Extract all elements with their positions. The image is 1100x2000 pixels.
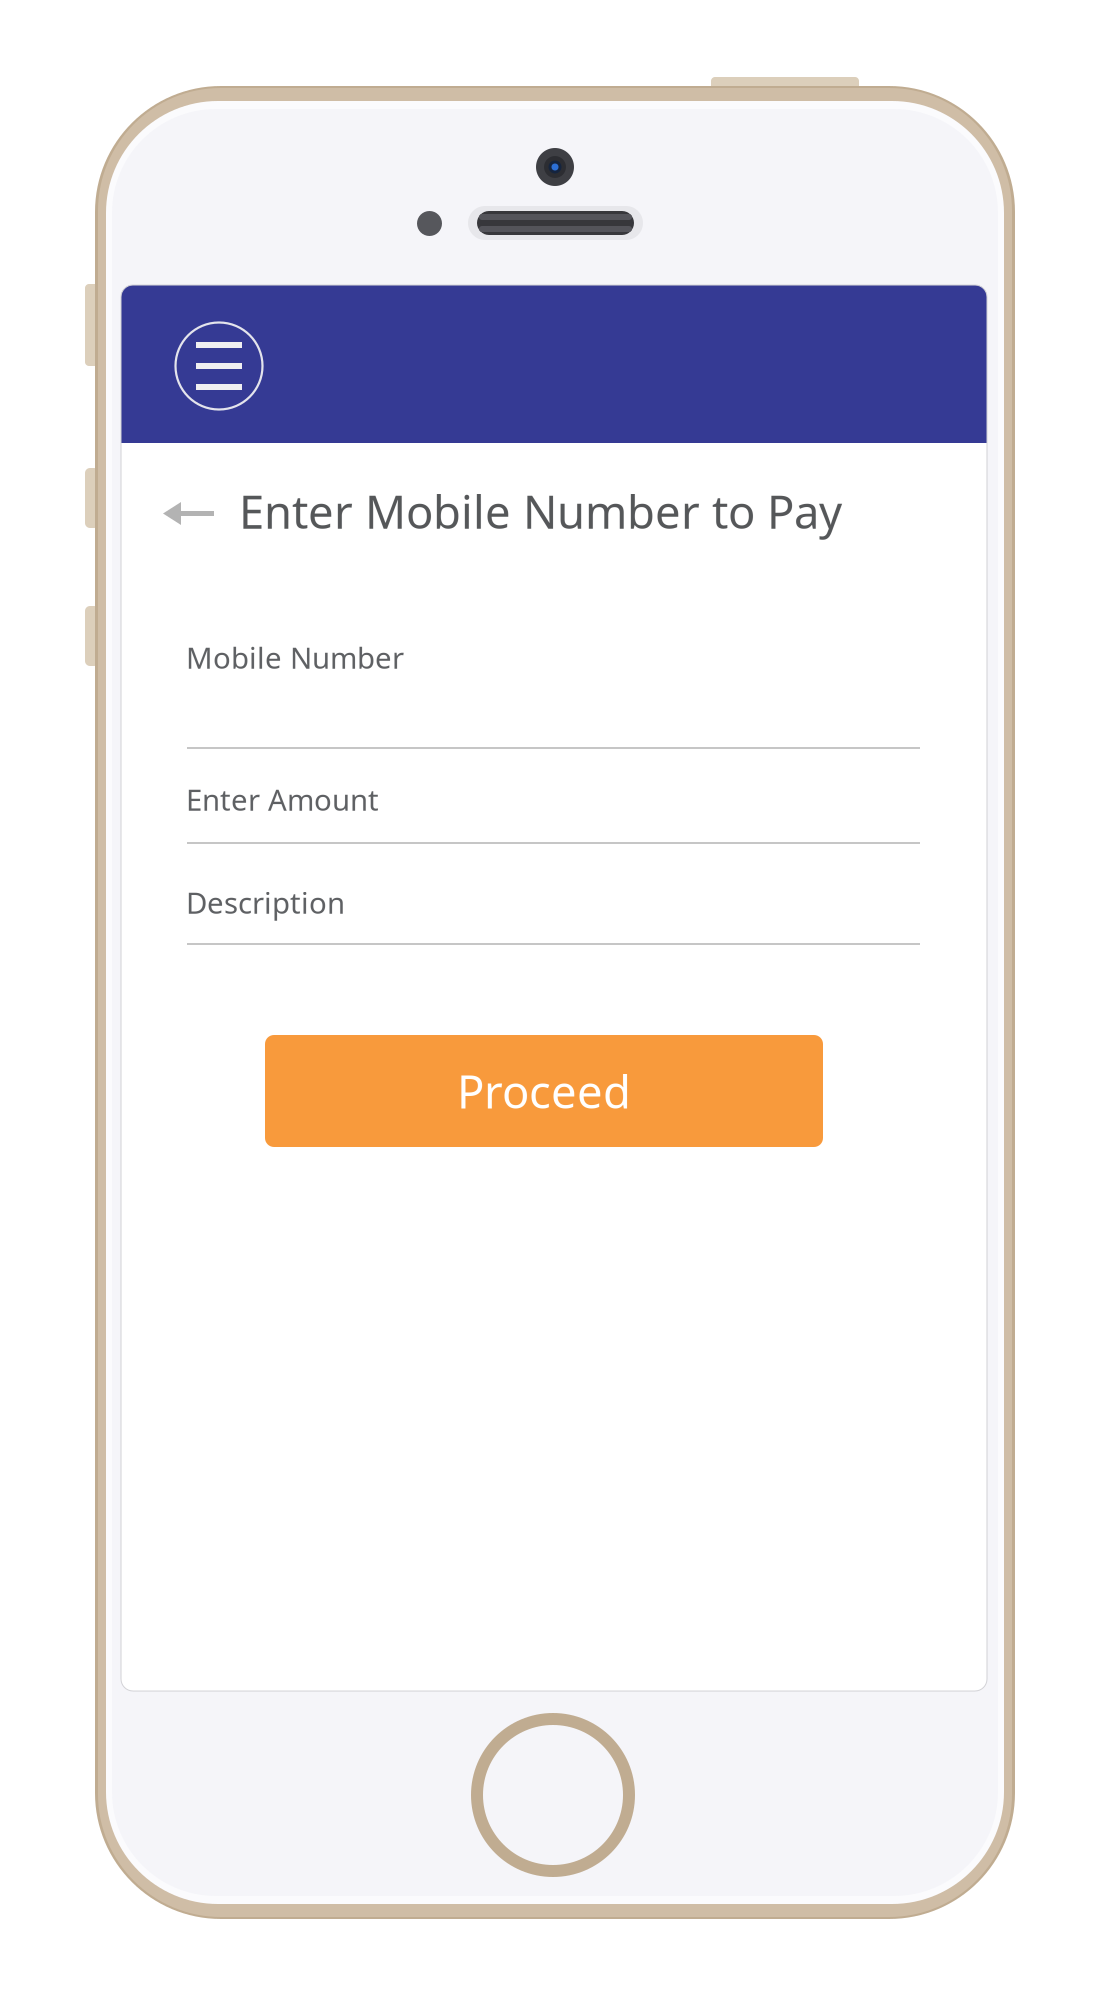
- button[interactable]: Menu: [154, 287, 284, 445]
- staticText: Enter Mobile Number to Pay: [239, 481, 842, 541]
- staticText: Proceed: [457, 1061, 631, 1121]
- button[interactable]: Enter Amount: [187, 755, 920, 844]
- staticText: Mobile Number: [186, 638, 404, 677]
- button[interactable]: Mobile Number: [187, 600, 920, 749]
- button[interactable]: Proceed: [265, 1035, 823, 1147]
- staticText: Enter Amount: [186, 780, 379, 819]
- button[interactable]: Back: [143, 476, 234, 551]
- button[interactable]: Description: [187, 855, 920, 945]
- staticText: Description: [186, 883, 345, 922]
